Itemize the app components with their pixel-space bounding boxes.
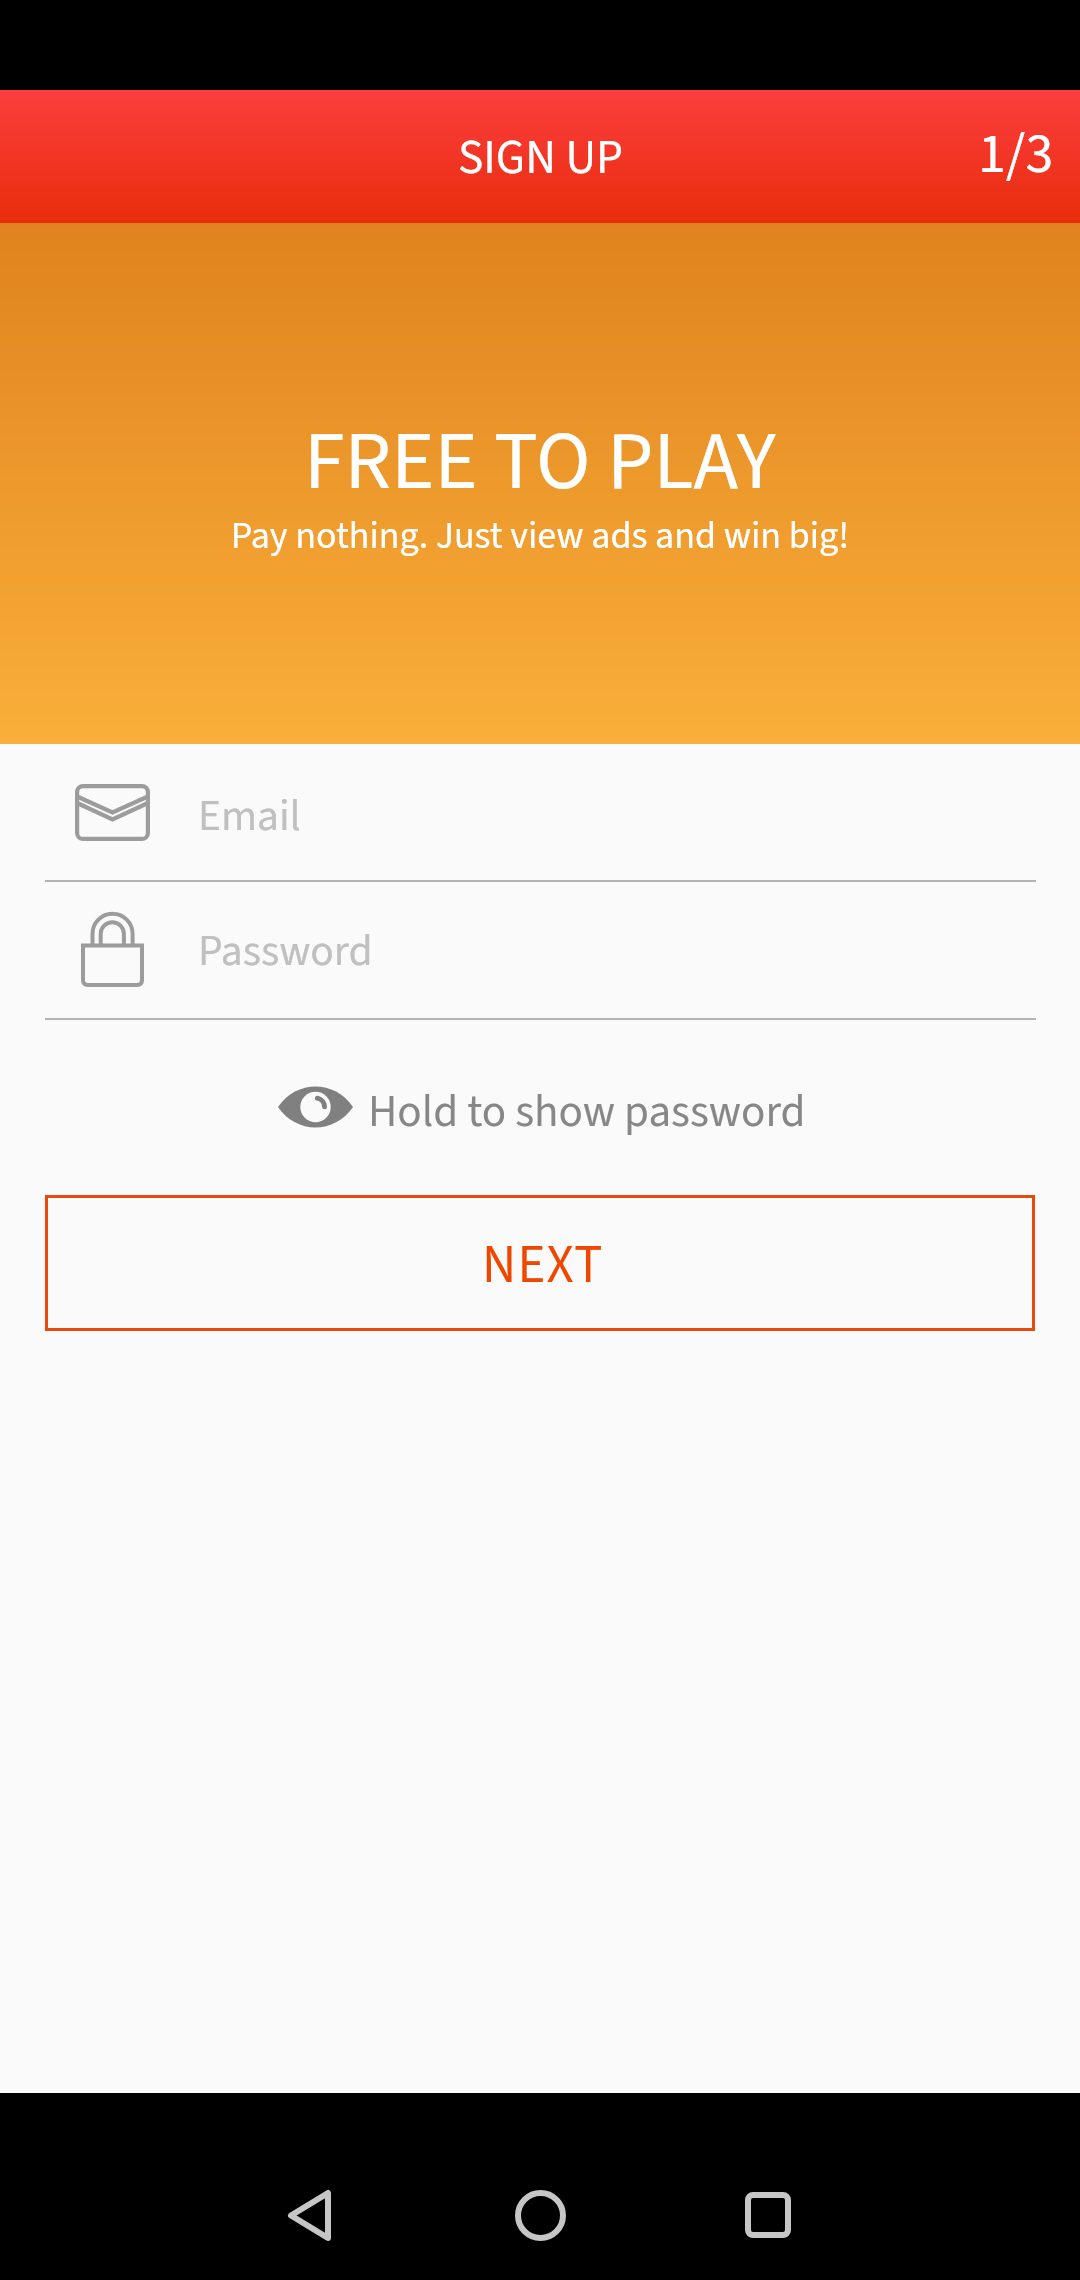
- button[interactable]: Email: [0, 744, 1080, 882]
- button[interactable]: Back: [257, 2185, 361, 2245]
- button[interactable]: Password: [0, 882, 1080, 1018]
- staticText: SIGN UP: [458, 124, 623, 192]
- button[interactable]: NEXT: [45, 1195, 1035, 1331]
- staticText: Email: [198, 785, 301, 847]
- staticText: Pay nothing. Just view ads and win big!: [0, 509, 1080, 563]
- staticText: 1/3: [978, 115, 1054, 195]
- staticText: FREE TO PLAY: [0, 404, 1080, 521]
- button[interactable]: [0, 90, 1080, 223]
- button[interactable]: Recent apps: [716, 2185, 820, 2245]
- button[interactable]: Hold to show password: [258, 1050, 822, 1168]
- button[interactable]: Home: [488, 2185, 592, 2245]
- staticText: Password: [198, 920, 373, 982]
- staticText: Hold to show password: [368, 1080, 806, 1144]
- staticText: NEXT: [482, 1228, 604, 1303]
